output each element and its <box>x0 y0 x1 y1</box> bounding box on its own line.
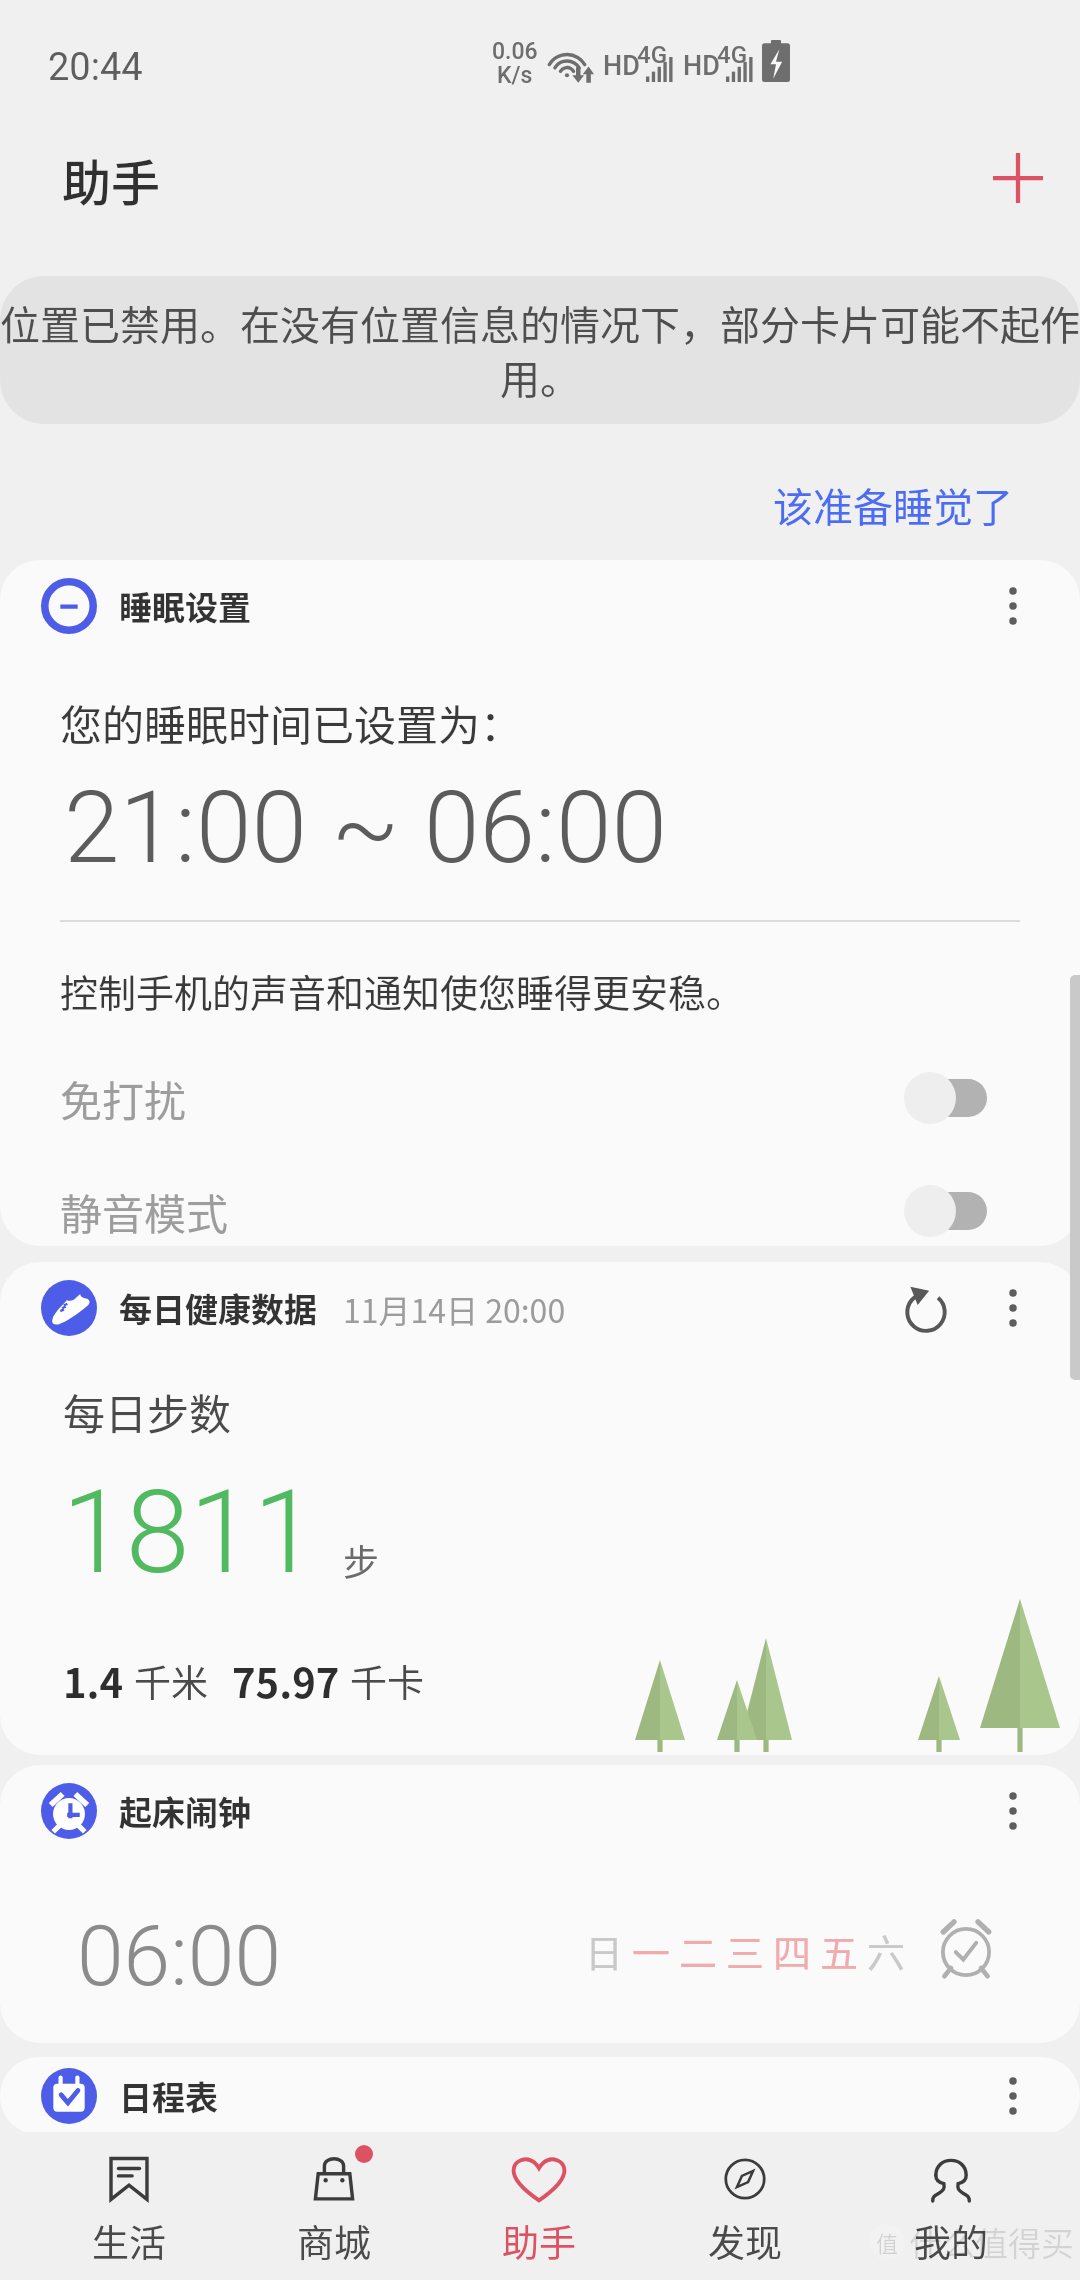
button[interactable]: Add <box>976 136 1060 220</box>
button[interactable]: More options <box>980 1275 1046 1341</box>
button[interactable]: 助手 <box>436 2132 642 2280</box>
button[interactable]: 商城 <box>231 2132 436 2280</box>
staticText: 四 <box>773 1923 812 1978</box>
staticText: 1811 <box>62 1465 318 1600</box>
staticText: HD <box>603 50 640 82</box>
staticText: 静音模式 <box>60 1181 229 1242</box>
staticText: 4G <box>637 41 667 69</box>
staticText: 助手 <box>62 144 161 215</box>
staticText: 六 <box>867 1923 906 1978</box>
staticText: 21:00 ~ 06:00 <box>64 769 667 886</box>
staticText: 什么值得买 <box>909 2218 1074 2266</box>
staticText: 值 <box>876 2226 899 2258</box>
staticText: 11月14日 20:00 <box>343 1286 566 1332</box>
staticText: 位置已禁用。在没有位置信息的情况下，部分卡片可能不起作用。 <box>0 294 1080 406</box>
staticText: 发现 <box>708 2214 782 2268</box>
button[interactable]: More options <box>980 573 1046 639</box>
staticText: 生活 <box>92 2214 166 2268</box>
staticText: 千卡 <box>350 1654 424 1708</box>
staticText: 五 <box>820 1923 859 1978</box>
button[interactable]: 免打扰 <box>0 1050 1080 1146</box>
staticText: 每日健康数据 <box>119 1284 317 1332</box>
button[interactable]: 每日健康数据 <box>0 1262 1080 1755</box>
button[interactable]: 起床闹钟 <box>0 1765 1080 2043</box>
staticText: 商城 <box>297 2214 371 2268</box>
button[interactable]: 日程表 <box>0 2057 1080 2135</box>
staticText: 1.4 <box>63 1652 124 1710</box>
staticText: 起床闹钟 <box>119 1787 251 1835</box>
staticText: 步 <box>343 1534 380 1586</box>
button[interactable]: More options <box>980 2063 1046 2129</box>
staticText: 二 <box>679 1923 718 1978</box>
button[interactable]: 我的 <box>848 2132 1054 2280</box>
staticText: 我的 <box>914 2214 988 2268</box>
staticText: 三 <box>726 1923 765 1978</box>
staticText: 75.97 <box>232 1652 340 1710</box>
staticText: 免打扰 <box>60 1068 187 1129</box>
staticText: 千米 <box>134 1654 208 1708</box>
staticText: 睡眠设置 <box>119 582 251 630</box>
button[interactable]: 发现 <box>642 2132 848 2280</box>
staticText: HD <box>683 50 720 82</box>
staticText: 日程表 <box>119 2072 218 2120</box>
staticText: 助手 <box>502 2214 576 2268</box>
staticText: 0.06 <box>492 38 538 65</box>
staticText: 每日步数 <box>63 1381 232 1442</box>
staticText: 20:44 <box>48 45 143 90</box>
staticText: 控制手机的声音和通知使您睡得更安稳。 <box>60 963 745 1018</box>
button[interactable]: 睡眠设置 <box>0 560 1080 1246</box>
button[interactable]: 位置已禁用。在没有位置信息的情况下，部分卡片可能不起作用。 <box>0 276 1080 424</box>
button[interactable]: 静音模式 <box>0 1163 1080 1246</box>
staticText: 4G <box>717 41 747 69</box>
staticText: K/s <box>497 62 533 89</box>
staticText: 您的睡眠时间已设置为： <box>60 692 523 753</box>
button[interactable]: 生活 <box>26 2132 231 2280</box>
button[interactable]: 该准备睡觉了 <box>773 476 1013 534</box>
button[interactable]: More options <box>980 1778 1046 1844</box>
staticText: 一 <box>632 1923 671 1978</box>
staticText: 06:00 <box>77 1907 282 2005</box>
staticText: 日 <box>585 1923 624 1978</box>
button[interactable]: Refresh <box>888 1270 964 1346</box>
